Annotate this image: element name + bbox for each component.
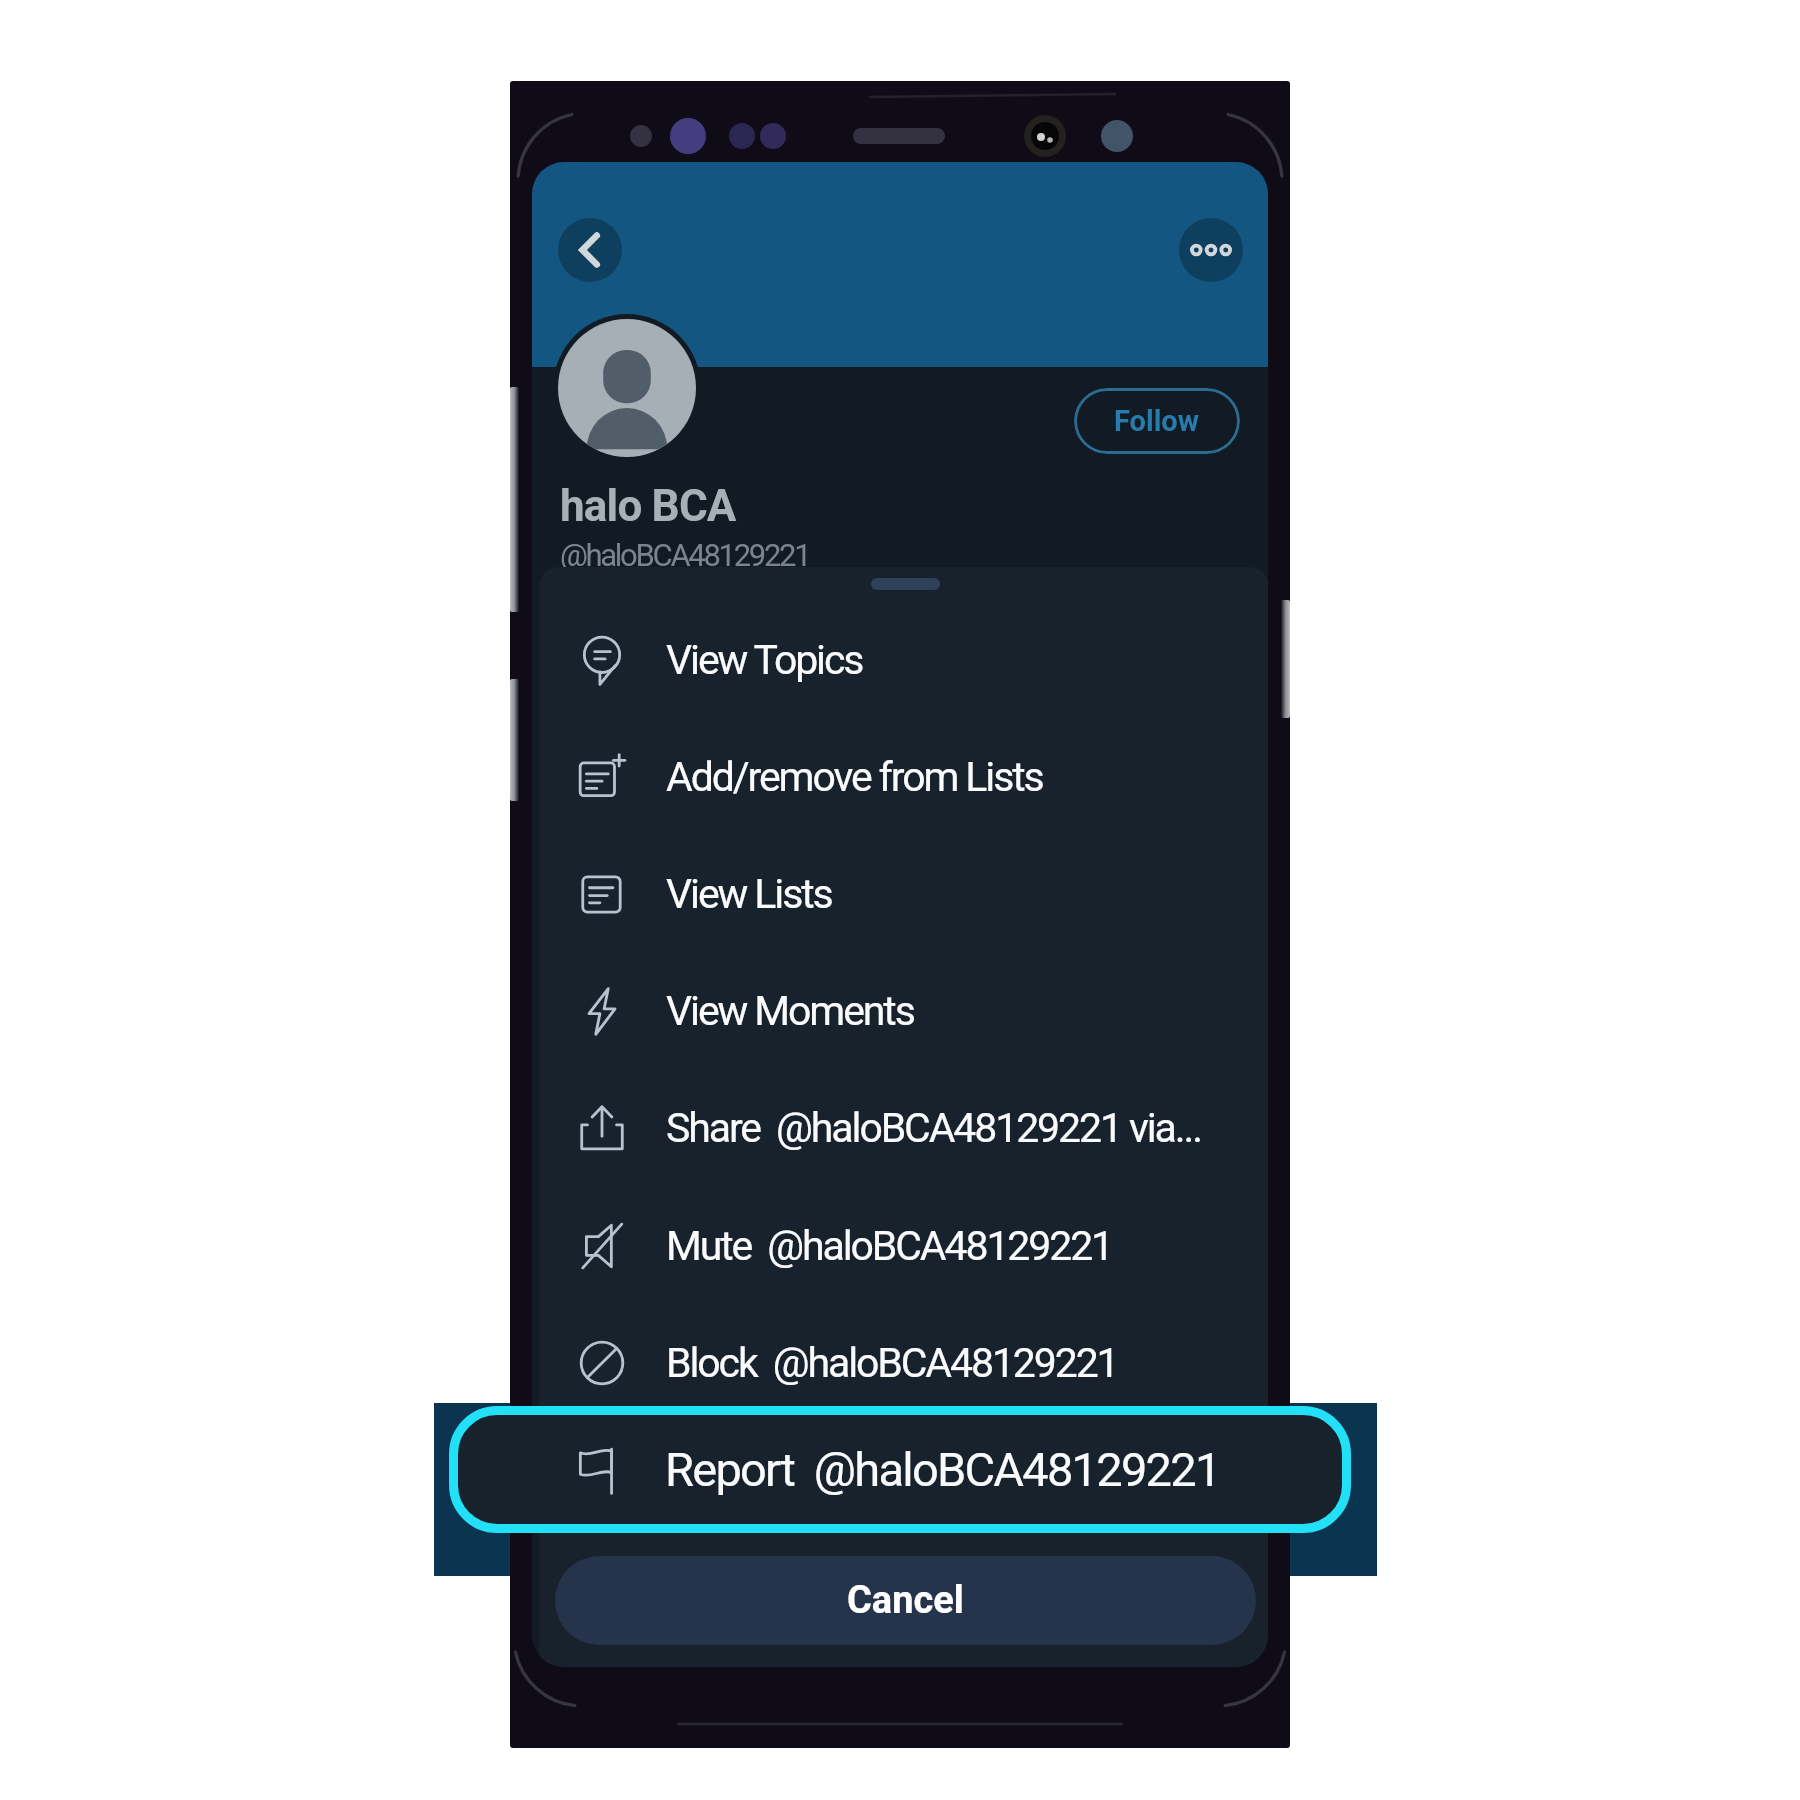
staticText: View Moments [666, 987, 914, 1035]
staticText: @haloBCA48129221 [560, 537, 810, 573]
button[interactable]: Add/remove from Lists [539, 720, 1268, 834]
button[interactable]: Cancel [555, 1556, 1256, 1645]
staticText: Report @haloBCA48129221 [665, 1442, 1220, 1497]
button[interactable]: Mute @haloBCA48129221 [539, 1189, 1268, 1303]
staticText: View Topics [666, 636, 863, 684]
button[interactable]: View Moments [539, 954, 1268, 1068]
button[interactable]: Block @haloBCA48129221 [539, 1306, 1268, 1420]
button[interactable]: Share @haloBCA48129221 via... [539, 1071, 1268, 1185]
staticText: Follow [1114, 404, 1200, 438]
staticText: Block @haloBCA48129221 [666, 1339, 1118, 1387]
staticText: Mute @haloBCA48129221 [666, 1222, 1113, 1270]
staticText: View Lists [666, 870, 832, 918]
button[interactable]: Report @haloBCA48129221 [449, 1406, 1351, 1533]
button[interactable]: View Topics [539, 603, 1268, 717]
staticText: Cancel [847, 1578, 964, 1623]
staticText: Add/remove from Lists [666, 753, 1043, 801]
button[interactable]: Back [558, 218, 622, 282]
staticText: Share @haloBCA48129221 via... [666, 1104, 1201, 1152]
staticText: halo BCA [560, 480, 736, 532]
button[interactable]: More options [1179, 218, 1243, 282]
button[interactable]: Follow [1074, 388, 1240, 454]
button[interactable]: View Lists [539, 837, 1268, 951]
